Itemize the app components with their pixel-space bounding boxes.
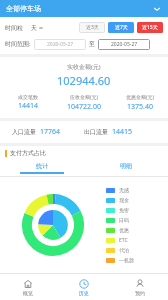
other: Overview [23, 279, 33, 289]
staticText: 104722.00 [67, 102, 101, 112]
staticText: 免密 [119, 207, 129, 213]
staticText: 至 [89, 40, 95, 48]
button[interactable]: 天 [31, 24, 43, 32]
staticText: 14415 [112, 127, 133, 137]
staticText: 时间范围: [5, 40, 31, 48]
staticText: 预约 [135, 290, 145, 296]
staticText: 日码 [119, 217, 129, 223]
staticText: 一机源 [119, 257, 134, 263]
staticText: 入口流量 [12, 128, 36, 136]
button[interactable]: 统计 [0, 160, 84, 176]
button[interactable]: ETC [106, 235, 168, 245]
button[interactable]: Overview [0, 279, 56, 296]
button[interactable]: 优惠 [106, 225, 168, 235]
staticText: 优惠金额(元) [126, 94, 155, 101]
staticText: 优惠 [119, 227, 129, 233]
button[interactable]: 全部停车场 [0, 0, 168, 17]
staticText: 支付方式占比 [10, 149, 46, 157]
staticText: 14414 [18, 101, 39, 111]
staticText: 全部停车场 [6, 4, 41, 13]
other: Expand parking lot selector [152, 4, 162, 14]
staticText: 2020-05-27 [111, 41, 138, 48]
button[interactable]: 免密 [106, 205, 168, 215]
button[interactable]: Reservations [112, 279, 168, 296]
staticText: 近15天 [142, 24, 158, 31]
staticText: 近7天 [115, 24, 128, 31]
staticText: 无感 [119, 187, 129, 193]
other: Reservations [135, 279, 145, 289]
button[interactable]: 代泊 [106, 245, 168, 255]
button[interactable]: History [56, 279, 112, 296]
button[interactable]: 明细 [84, 160, 168, 176]
staticText: 明细 [120, 162, 132, 170]
button[interactable]: 2020-05-27 [34, 39, 86, 50]
staticText: 代泊 [119, 247, 129, 253]
button[interactable]: 现金 [106, 195, 168, 205]
button[interactable]: 一机源 [106, 255, 168, 265]
staticText: 现金 [119, 197, 129, 203]
staticText: 统计 [36, 162, 48, 170]
staticText: 概览 [23, 290, 33, 296]
staticText: 近3天 [86, 24, 99, 31]
staticText: 应收金额(元) [70, 94, 99, 101]
staticText: 17764 [40, 127, 61, 137]
button[interactable]: 无感 [106, 185, 168, 195]
staticText: 历史 [79, 290, 89, 296]
button[interactable]: 日码 [106, 215, 168, 225]
other: History [79, 279, 89, 289]
staticText: 实收金额(元) [67, 63, 101, 71]
staticText: 成交笔数 [18, 94, 38, 100]
staticText: 2020-05-27 [47, 41, 74, 48]
button[interactable]: 近15天 [137, 22, 163, 33]
staticText: 出口流量 [84, 128, 108, 136]
staticText: 时间粒 [5, 24, 23, 32]
button[interactable]: 近7天 [108, 22, 134, 33]
button[interactable]: 近3天 [79, 22, 105, 33]
staticText: 102944.60 [57, 73, 111, 88]
staticText: ETC [119, 237, 128, 244]
staticText: 天 [31, 24, 37, 32]
staticText: 1375.40 [127, 102, 153, 112]
button[interactable]: 2020-05-27 [98, 39, 150, 50]
